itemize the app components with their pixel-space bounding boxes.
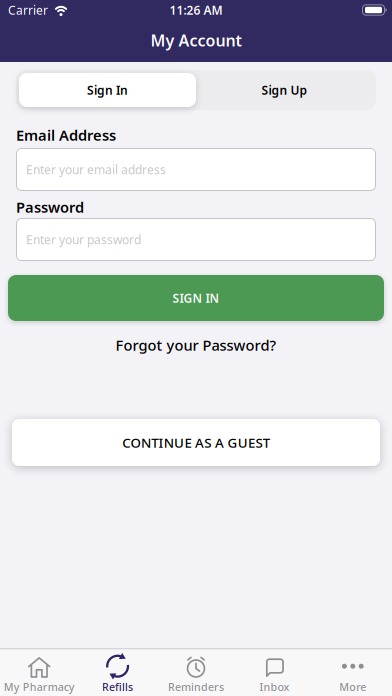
staticText: Enter your email address <box>26 161 166 177</box>
staticText: Reminders <box>168 680 224 694</box>
staticText: SIGN IN <box>172 290 219 306</box>
staticText: Sign Up <box>261 82 307 98</box>
button[interactable]: Inbox <box>235 654 314 694</box>
staticText: Carrier <box>8 2 48 18</box>
button[interactable]: Reminders <box>157 654 235 694</box>
staticText: Forgot your Password? <box>115 335 276 355</box>
button[interactable]: CONTINUE AS A GUEST <box>12 419 380 466</box>
staticText: 11:26 AM <box>169 2 222 18</box>
button[interactable]: SIGN IN <box>8 275 384 321</box>
button[interactable]: Forgot your Password? <box>115 334 276 356</box>
staticText: My Pharmacy <box>4 680 75 694</box>
staticText: CONTINUE AS A GUEST <box>122 434 270 451</box>
staticText: Inbox <box>259 680 289 694</box>
staticText: Enter your password <box>26 231 141 247</box>
button[interactable]: Sign Up <box>196 73 373 107</box>
staticText: My Account <box>150 30 241 51</box>
staticText: Password <box>16 197 84 217</box>
staticText: Email Address <box>16 125 116 145</box>
button[interactable]: Sign In <box>19 73 196 107</box>
button[interactable]: Refills <box>78 654 157 694</box>
button[interactable]: My Pharmacy <box>0 654 78 694</box>
staticText: More <box>339 680 366 694</box>
button[interactable]: More <box>314 654 392 694</box>
staticText: Refills <box>102 680 133 694</box>
staticText: Sign In <box>87 82 128 98</box>
